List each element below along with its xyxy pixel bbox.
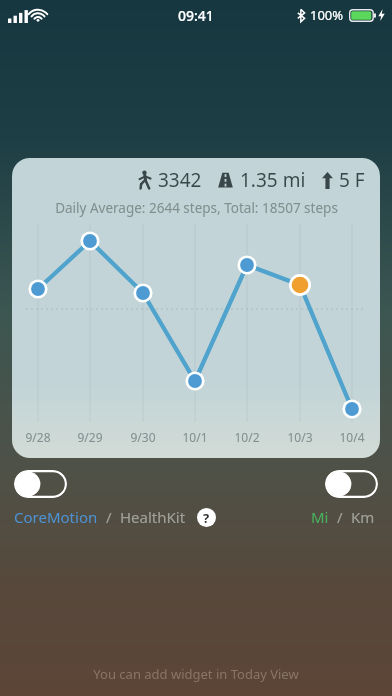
staticText: / <box>337 507 343 527</box>
staticText: 9/29 <box>68 429 112 445</box>
button[interactable]: Switch between CoreMotion and HealthKit <box>14 470 67 498</box>
staticText: ? <box>203 509 210 527</box>
staticText: 10/1 <box>173 429 217 445</box>
staticText: 100% <box>310 6 344 24</box>
staticText: Daily Average: 2644 steps, Total: 18507 … <box>55 199 338 217</box>
staticText: 10/4 <box>330 429 374 445</box>
staticText: 9/28 <box>16 429 60 445</box>
staticText: 09:41 <box>178 6 214 25</box>
staticText: / <box>106 507 112 527</box>
button[interactable]: Mi <box>311 507 329 527</box>
staticText: 9/30 <box>121 429 165 445</box>
staticText: 10/3 <box>278 429 322 445</box>
button[interactable]: HealthKit <box>120 507 186 527</box>
staticText: 1.35 mi <box>240 167 306 193</box>
staticText: 5 F <box>339 167 365 193</box>
button[interactable]: CoreMotion <box>14 507 98 527</box>
button[interactable]: Switch between miles and kilometers <box>325 470 378 498</box>
staticText: 3342 <box>158 167 202 193</box>
staticText: 10/2 <box>225 429 269 445</box>
button[interactable]: Help <box>197 508 216 527</box>
button[interactable]: Km <box>351 507 375 527</box>
staticText: You can add widget in Today View <box>0 665 392 683</box>
